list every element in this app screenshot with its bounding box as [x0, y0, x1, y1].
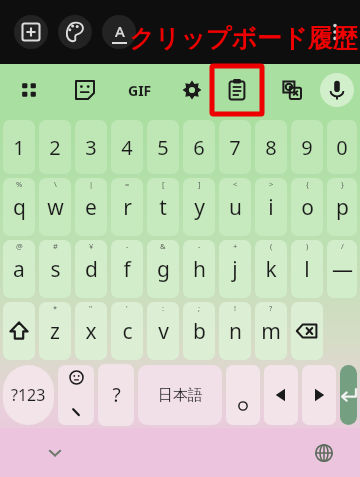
staticText: d	[85, 255, 98, 284]
staticText: )	[306, 241, 309, 251]
staticText: |	[89, 179, 94, 189]
button[interactable]: r	[111, 178, 143, 236]
staticText: :	[162, 303, 165, 313]
staticText: m	[261, 317, 281, 346]
staticText: v	[158, 317, 169, 346]
button[interactable]: Backspace	[291, 302, 323, 360]
staticText: !	[234, 303, 237, 313]
button[interactable]: 9	[291, 120, 323, 174]
button[interactable]: m	[255, 302, 287, 360]
staticText: #	[53, 241, 58, 251]
staticText: —	[332, 255, 353, 284]
staticText: k	[265, 255, 277, 284]
button[interactable]: Settings	[175, 64, 209, 116]
staticText: {	[306, 179, 309, 189]
staticText: 3	[85, 134, 97, 161]
button[interactable]: Text style	[102, 15, 136, 49]
staticText: 6	[193, 134, 205, 161]
staticText: 1	[13, 134, 25, 161]
button[interactable]: Stickers	[68, 64, 102, 116]
staticText: n	[229, 317, 242, 346]
button[interactable]: y	[183, 178, 215, 236]
button[interactable]: 日本語	[138, 365, 222, 425]
button[interactable]: t	[147, 178, 179, 236]
staticText: c	[122, 317, 133, 346]
staticText: <	[233, 179, 238, 189]
staticText: }	[341, 179, 344, 189]
button[interactable]: Clipboard history	[220, 64, 254, 116]
button[interactable]: u	[219, 178, 251, 236]
staticText: *	[53, 303, 58, 313]
button[interactable]: Emoji and comma	[58, 365, 94, 425]
button[interactable]: —	[327, 240, 357, 298]
staticText: ¥	[89, 241, 94, 251]
staticText: \	[54, 179, 57, 189]
staticText: b	[193, 317, 206, 346]
button[interactable]: Change language	[309, 438, 339, 468]
staticText: z	[50, 317, 60, 346]
staticText: t	[159, 193, 167, 222]
button[interactable]: ?	[98, 364, 134, 426]
button[interactable]: Move cursor right	[302, 365, 336, 425]
button[interactable]: Hide keyboard	[40, 438, 70, 468]
button[interactable]: 8	[255, 120, 287, 174]
staticText: ?	[112, 382, 121, 408]
button[interactable]: g	[147, 240, 179, 298]
button[interactable]: x	[75, 302, 107, 360]
staticText: u	[229, 193, 242, 222]
staticText: x	[85, 317, 97, 346]
button[interactable]: f	[111, 240, 143, 298]
staticText: o	[301, 193, 314, 222]
staticText: 8	[265, 134, 277, 161]
button[interactable]: n	[219, 302, 251, 360]
button[interactable]: 4	[111, 120, 143, 174]
button[interactable]: Enter	[340, 365, 357, 425]
button[interactable]: s	[39, 240, 71, 298]
button[interactable]: GIF	[123, 64, 157, 116]
button[interactable]: 5	[147, 120, 179, 174]
button[interactable]: p	[327, 178, 357, 236]
button[interactable]: Apps	[12, 64, 46, 116]
button[interactable]: q	[3, 178, 35, 236]
button[interactable]: i	[255, 178, 287, 236]
staticText: ?123	[11, 384, 46, 406]
button[interactable]: Theme	[58, 15, 92, 49]
button[interactable]: 7	[219, 120, 251, 174]
button[interactable]: Period	[226, 365, 260, 425]
button[interactable]: h	[183, 240, 215, 298]
button[interactable]: c	[111, 302, 143, 360]
staticText: '	[126, 303, 128, 313]
button[interactable]: Translate	[275, 64, 309, 116]
button[interactable]: l	[291, 240, 323, 298]
staticText: -	[126, 241, 129, 251]
staticText: +	[233, 241, 238, 251]
button[interactable]: z	[39, 302, 71, 360]
button[interactable]: b	[183, 302, 215, 360]
staticText: 5	[157, 134, 169, 161]
button[interactable]: 0	[327, 120, 357, 174]
button[interactable]: 1	[3, 120, 35, 174]
button[interactable]: a	[3, 240, 35, 298]
button[interactable]: More options	[320, 17, 350, 47]
button[interactable]: v	[147, 302, 179, 360]
button[interactable]: w	[39, 178, 71, 236]
button[interactable]: 2	[39, 120, 71, 174]
staticText: w	[47, 193, 64, 222]
staticText: r	[123, 193, 132, 222]
staticText: ;	[198, 303, 201, 313]
button[interactable]: Shift	[3, 302, 35, 360]
button[interactable]: e	[75, 178, 107, 236]
staticText: 4	[121, 134, 133, 161]
button[interactable]: Add	[14, 15, 48, 49]
staticText: "	[89, 303, 93, 313]
button[interactable]: Move cursor left	[264, 365, 298, 425]
button[interactable]: 6	[183, 120, 215, 174]
staticText: &	[160, 241, 166, 251]
button[interactable]: o	[291, 178, 323, 236]
button[interactable]: 3	[75, 120, 107, 174]
button[interactable]: k	[255, 240, 287, 298]
button[interactable]: d	[75, 240, 107, 298]
button[interactable]: Voice input	[320, 73, 354, 107]
button[interactable]: j	[219, 240, 251, 298]
button[interactable]: ?123	[3, 365, 54, 425]
